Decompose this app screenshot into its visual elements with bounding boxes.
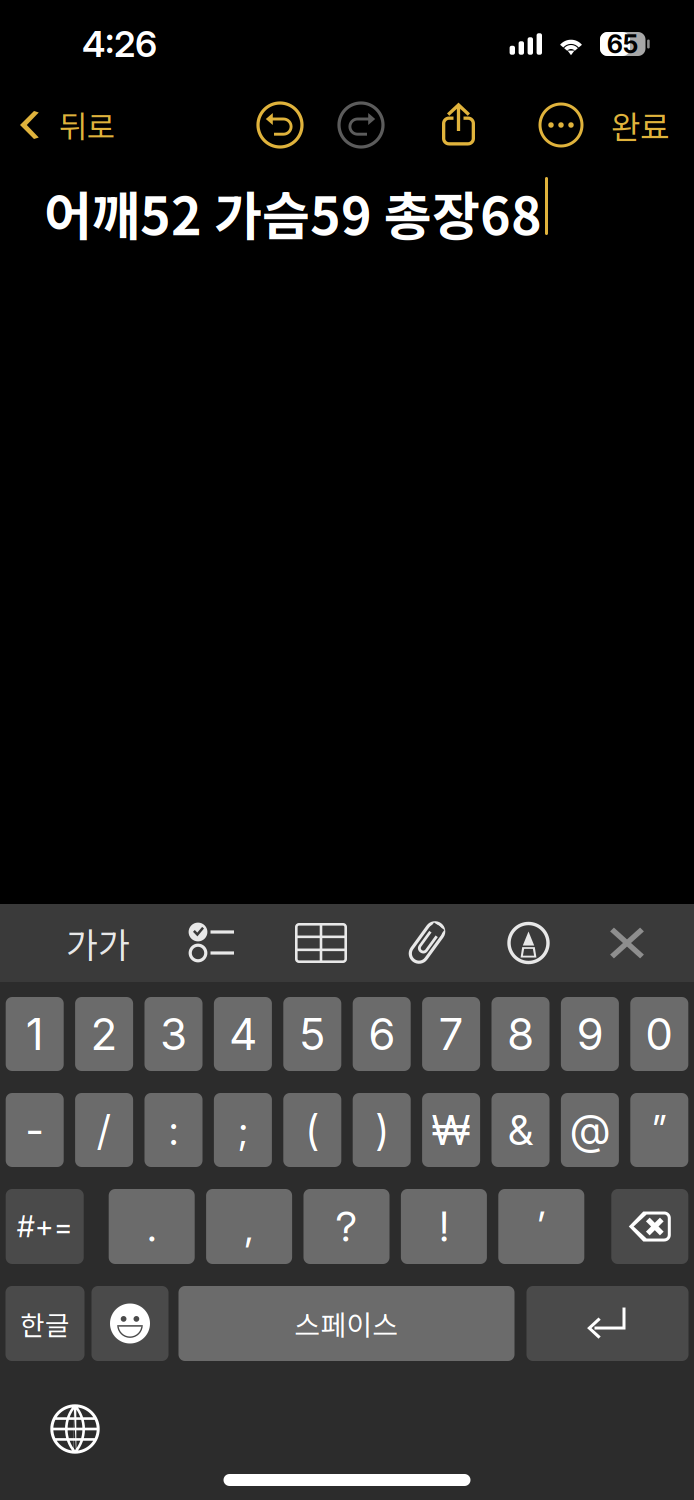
- button[interactable]: @: [561, 1093, 619, 1167]
- staticText: 한글: [20, 1304, 70, 1343]
- button[interactable]: Markup: [479, 904, 578, 982]
- staticText: 8: [507, 1007, 534, 1061]
- button[interactable]: 8: [491, 997, 549, 1071]
- button[interactable]: 가가: [0, 904, 155, 982]
- button[interactable]: !: [401, 1189, 487, 1264]
- staticText: :: [169, 1105, 178, 1155]
- button[interactable]: (: [283, 1093, 341, 1167]
- button[interactable]: 스페이스: [178, 1286, 514, 1361]
- staticText: ;: [238, 1105, 247, 1155]
- button[interactable]: Delete: [611, 1189, 688, 1264]
- staticText: 어깨52 가슴59 총장68: [44, 175, 542, 250]
- staticText: 9: [576, 1007, 603, 1061]
- button[interactable]: 9: [561, 997, 619, 1071]
- staticText: 65: [607, 29, 639, 59]
- button[interactable]: ”: [630, 1093, 688, 1167]
- staticText: .: [147, 1201, 156, 1251]
- button[interactable]: Return: [526, 1286, 688, 1361]
- button[interactable]: 1: [6, 997, 64, 1071]
- staticText: 0: [645, 1007, 673, 1061]
- button[interactable]: ’: [498, 1189, 584, 1264]
- staticText: 6: [368, 1007, 395, 1061]
- staticText: 뒤로: [59, 103, 115, 147]
- staticText: ”: [652, 1105, 666, 1155]
- button[interactable]: :: [144, 1093, 202, 1167]
- staticText: 7: [439, 1007, 464, 1061]
- staticText: @: [570, 1105, 610, 1155]
- staticText: 완료: [611, 102, 669, 148]
- staticText: -: [26, 1105, 44, 1155]
- button[interactable]: 완료: [611, 96, 694, 154]
- staticText: ?: [335, 1201, 357, 1251]
- staticText: 1: [26, 1007, 44, 1061]
- staticText: 4:26: [82, 22, 157, 66]
- staticText: &: [508, 1105, 533, 1155]
- staticText: ’: [537, 1201, 545, 1251]
- staticText: 스페이스: [294, 1303, 398, 1344]
- button[interactable]: More: [539, 103, 583, 147]
- button[interactable]: ;: [214, 1093, 272, 1167]
- staticText: #+=: [17, 1209, 73, 1244]
- button[interactable]: -: [6, 1093, 64, 1167]
- staticText: 4: [229, 1007, 257, 1061]
- button[interactable]: Next keyboard: [35, 1395, 115, 1463]
- button[interactable]: #+=: [6, 1189, 84, 1264]
- button[interactable]: 한글: [5, 1286, 84, 1361]
- staticText: ,: [245, 1201, 254, 1251]
- button[interactable]: Share: [441, 102, 476, 148]
- staticText: 3: [160, 1007, 187, 1061]
- button[interactable]: Undo: [257, 102, 303, 148]
- staticText: !: [439, 1201, 448, 1251]
- staticText: ): [376, 1105, 388, 1155]
- button[interactable]: &: [491, 1093, 549, 1167]
- button[interactable]: ,: [206, 1189, 292, 1264]
- button[interactable]: 4: [214, 997, 272, 1071]
- button[interactable]: ?: [303, 1189, 389, 1264]
- button[interactable]: Checklist: [155, 904, 267, 982]
- staticText: ₩: [432, 1105, 470, 1155]
- button[interactable]: Redo: [338, 102, 384, 148]
- staticText: /: [97, 1105, 111, 1155]
- staticText: 5: [299, 1007, 326, 1061]
- button[interactable]: ): [353, 1093, 411, 1167]
- button[interactable]: Emoji: [91, 1286, 168, 1361]
- button[interactable]: 6: [353, 997, 411, 1071]
- staticText: 가가: [66, 918, 130, 968]
- staticText: 2: [91, 1007, 118, 1061]
- button[interactable]: Table: [267, 904, 375, 982]
- button[interactable]: Close keyboard: [578, 904, 676, 982]
- button[interactable]: 0: [630, 997, 688, 1071]
- button[interactable]: Attach: [375, 904, 479, 982]
- staticText: (: [306, 1105, 318, 1155]
- button[interactable]: ₩: [422, 1093, 480, 1167]
- button[interactable]: 7: [422, 997, 480, 1071]
- button[interactable]: .: [109, 1189, 195, 1264]
- button[interactable]: 2: [75, 997, 133, 1071]
- button[interactable]: 3: [144, 997, 202, 1071]
- button[interactable]: /: [75, 1093, 133, 1167]
- button[interactable]: 5: [283, 997, 341, 1071]
- button[interactable]: 뒤로: [0, 97, 115, 153]
